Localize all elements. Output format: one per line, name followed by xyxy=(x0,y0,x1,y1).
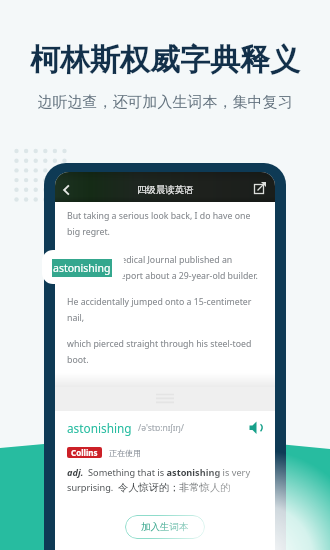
staticText: Collins xyxy=(71,447,98,458)
staticText: adj. Something that is astonishing is ve… xyxy=(67,466,264,494)
button[interactable]: Share xyxy=(252,180,268,196)
staticText: astonishing xyxy=(67,420,132,436)
staticText: The British Medical Journal published an… xyxy=(67,254,262,282)
button[interactable]: astonishing xyxy=(42,250,124,284)
staticText: He accidentally jumped onto a 15-centime… xyxy=(67,296,262,324)
staticText: 正在使用 xyxy=(109,448,141,458)
staticText: astonishing xyxy=(53,261,111,275)
button[interactable]: Back xyxy=(56,179,77,200)
button[interactable]: Play pronunciation xyxy=(248,420,264,436)
staticText: 四级晨读英语 xyxy=(137,184,194,196)
staticText: which pierced straight through his steel… xyxy=(67,338,262,366)
staticText: 柯林斯权威字典释义 xyxy=(0,41,330,79)
staticText: 边听边查，还可加入生词本，集中复习 xyxy=(0,93,330,112)
staticText: /ə'stɒ:nɪʃɪŋ/ xyxy=(138,422,185,434)
staticText: 加入生词本 xyxy=(141,521,189,533)
button[interactable]: 加入生词本 xyxy=(125,515,205,539)
staticText: But taking a serious look back, I do hav… xyxy=(67,210,262,238)
